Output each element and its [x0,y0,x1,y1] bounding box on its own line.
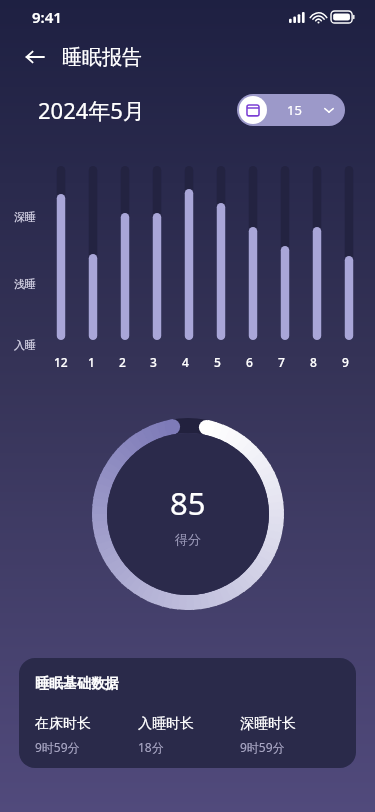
staticText: 得分 [175,531,201,547]
staticText: 深睡 [14,210,36,224]
staticText: 入睡时长 [138,715,194,733]
staticText: 2 [119,354,126,370]
staticText: 1 [88,354,95,370]
staticText: 4 [182,354,189,370]
staticText: 9时59分 [240,739,285,755]
staticText: 在床时长 [35,715,91,733]
staticText: 深睡时长 [240,715,296,733]
staticText: 7 [278,354,285,370]
button[interactable]: 15 [237,94,345,126]
staticText: 入睡 [14,338,36,352]
staticText: 15 [287,101,302,119]
staticText: 3 [150,354,157,370]
staticText: 9时59分 [35,739,80,755]
staticText: 8 [310,354,317,370]
staticText: 睡眠基础数据 [35,675,119,693]
staticText: 5 [214,354,221,370]
staticText: 9 [342,354,349,370]
staticText: 85 [170,482,206,524]
staticText: 2024年5月 [38,95,145,125]
staticText: 6 [246,354,253,370]
staticText: 9:41 [32,7,62,27]
staticText: 浅睡 [14,277,36,291]
button[interactable]: 睡眠基础数据 [19,658,356,768]
button[interactable]: Back [14,36,56,78]
staticText: 睡眠报告 [62,45,142,70]
staticText: 18分 [138,739,164,755]
staticText: 12 [54,354,68,370]
